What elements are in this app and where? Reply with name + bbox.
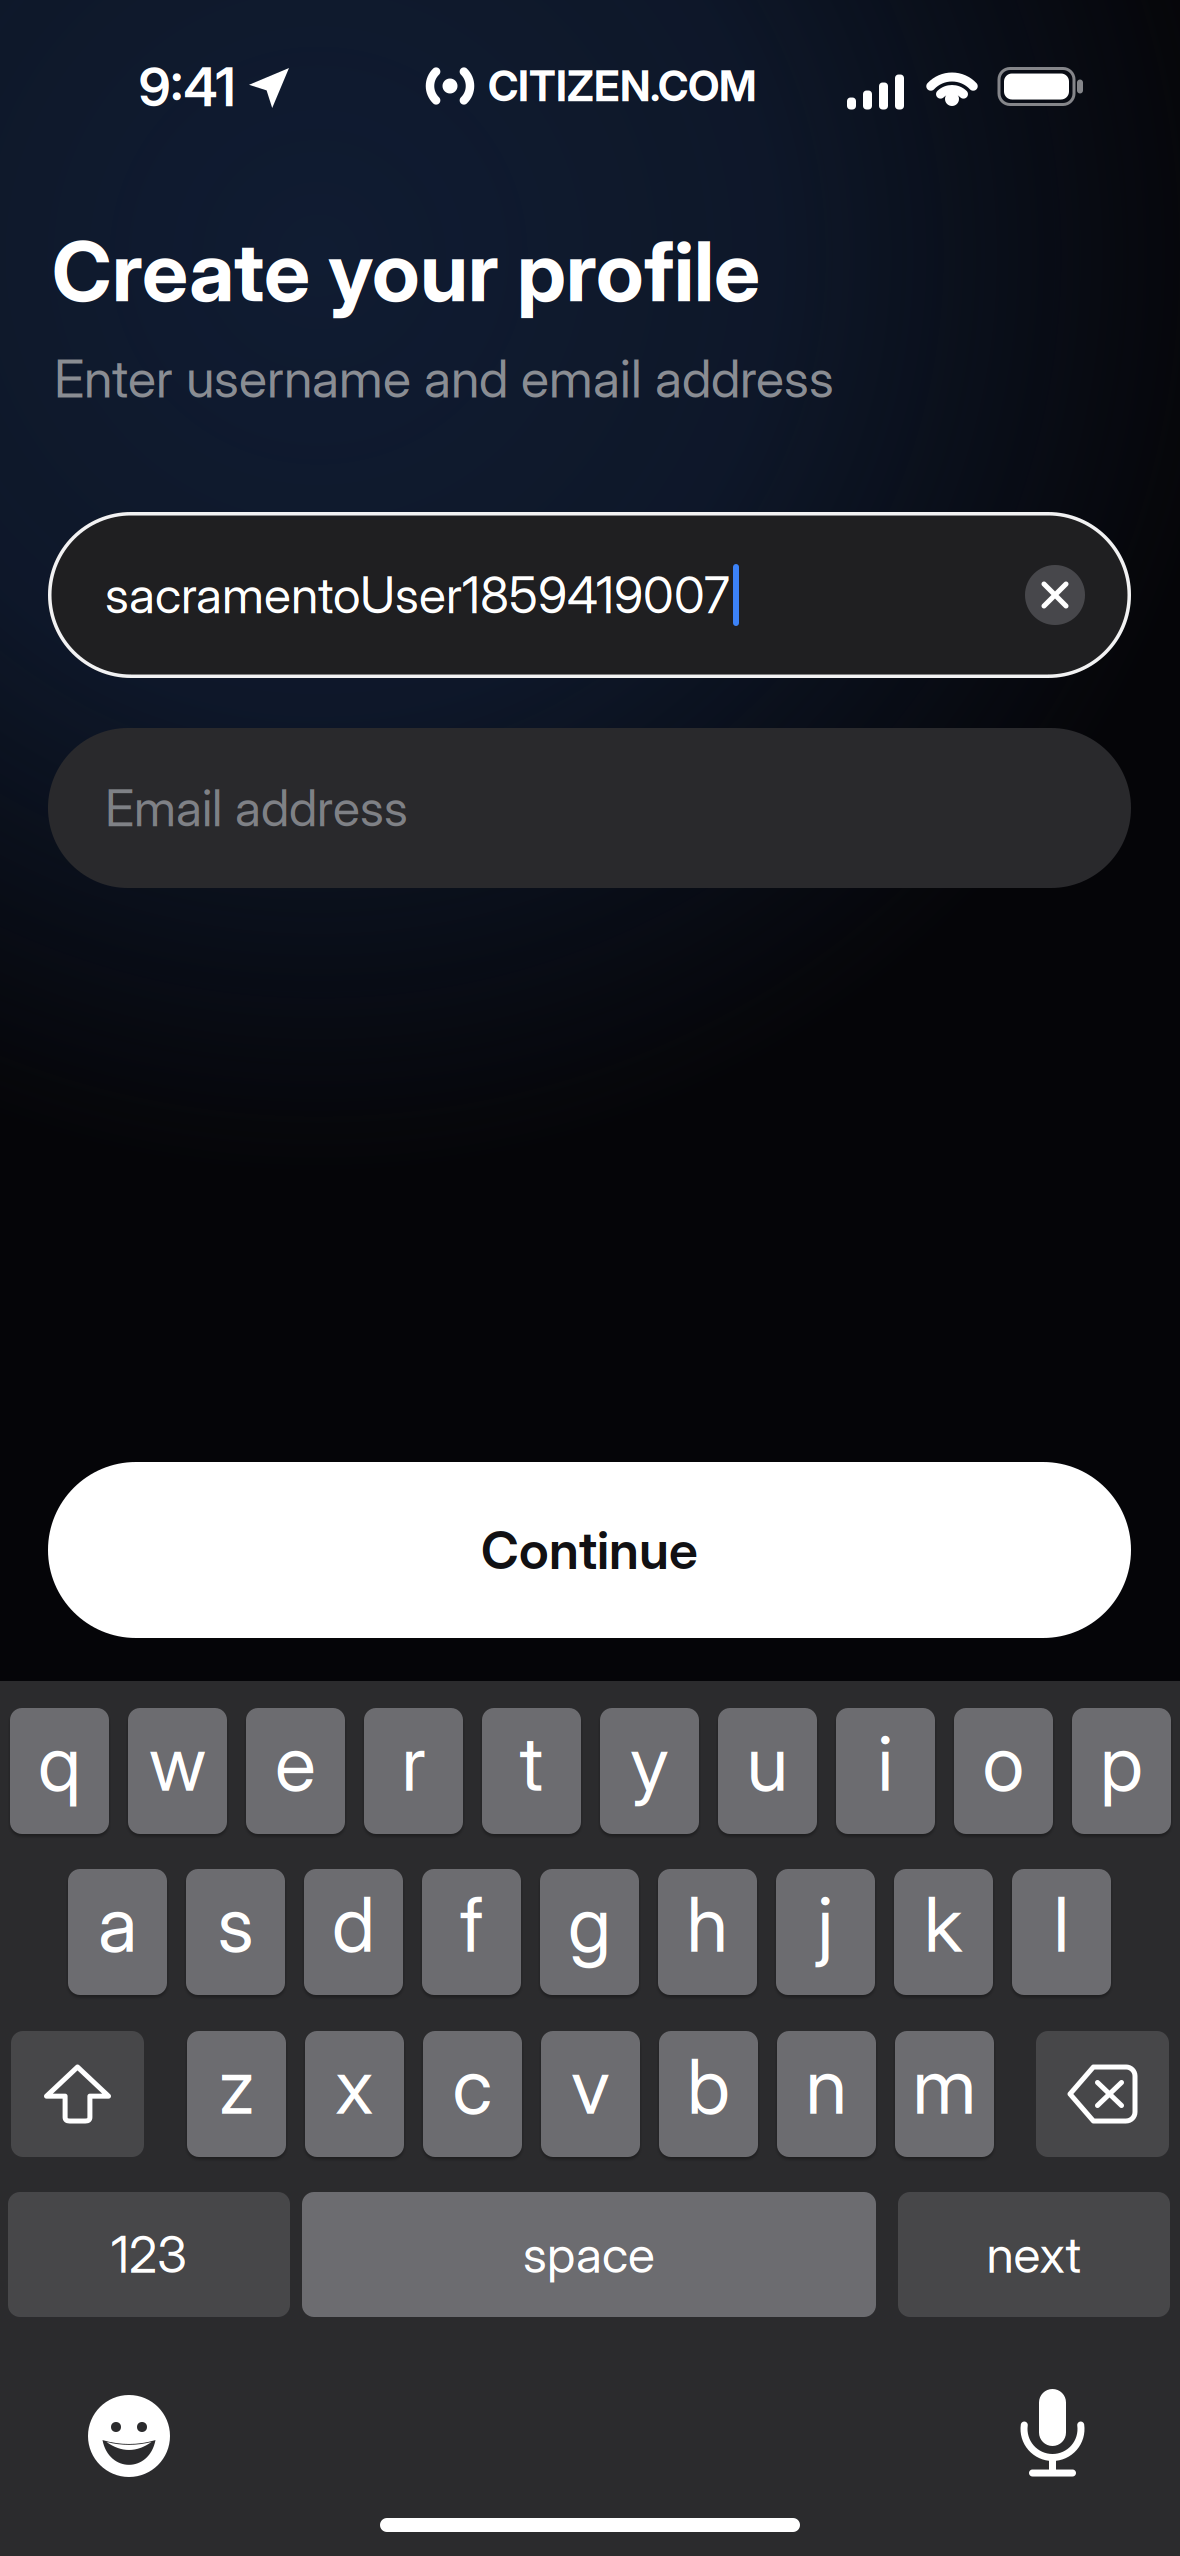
button[interactable]: Email address (48, 728, 1131, 888)
staticText: h (686, 1879, 728, 1969)
staticText: 9:41 (138, 56, 235, 118)
staticText: Email address (105, 778, 408, 837)
staticText: g (568, 1879, 611, 1969)
button[interactable]: s (186, 1869, 285, 1995)
staticText: d (332, 1879, 375, 1969)
staticText: z (218, 2041, 254, 2131)
button[interactable]: b (659, 2031, 758, 2157)
staticText: v (571, 2041, 610, 2131)
staticText: sacramentoUser1859419007 (105, 565, 730, 624)
button[interactable]: r (364, 1708, 463, 1834)
button[interactable]: f (422, 1869, 521, 1995)
button[interactable]: Dictate (1024, 2389, 1081, 2477)
button[interactable]: o (954, 1708, 1053, 1834)
staticText: i (877, 1718, 893, 1808)
staticText: next (986, 2225, 1081, 2284)
staticText: r (401, 1718, 425, 1808)
button[interactable]: Emoji (88, 2395, 170, 2477)
button[interactable]: q (10, 1708, 109, 1834)
staticText: a (98, 1879, 137, 1969)
button[interactable]: z (187, 2031, 286, 2157)
staticText: 123 (111, 2225, 187, 2284)
button[interactable]: c (423, 2031, 522, 2157)
staticText: b (687, 2041, 730, 2131)
button[interactable]: k (894, 1869, 993, 1995)
staticText: t (519, 1718, 543, 1808)
staticText: s (217, 1879, 253, 1969)
button[interactable]: h (658, 1869, 757, 1995)
button[interactable]: next (898, 2192, 1170, 2317)
staticText: l (1053, 1879, 1069, 1969)
button[interactable]: a (68, 1869, 167, 1995)
button[interactable]: m (895, 2031, 994, 2157)
staticText: x (335, 2041, 374, 2131)
button[interactable]: e (246, 1708, 345, 1834)
staticText: c (452, 2041, 492, 2131)
button[interactable]: Shift (11, 2031, 144, 2157)
button[interactable]: v (541, 2031, 640, 2157)
staticText: p (1100, 1718, 1143, 1808)
button[interactable]: l (1012, 1869, 1111, 1995)
button[interactable]: i (836, 1708, 935, 1834)
staticText: j (817, 1879, 833, 1969)
staticText: f (460, 1879, 483, 1969)
button[interactable]: space (302, 2192, 876, 2317)
staticText: Enter username and email address (54, 348, 834, 409)
button[interactable]: 123 (8, 2192, 290, 2317)
staticText: CITIZEN.COM (488, 61, 757, 111)
button[interactable]: Clear text (1025, 565, 1085, 625)
button[interactable]: x (305, 2031, 404, 2157)
button[interactable]: d (304, 1869, 403, 1995)
staticText: Continue (481, 1519, 698, 1581)
button[interactable]: t (482, 1708, 581, 1834)
staticText: o (982, 1718, 1024, 1808)
staticText: y (630, 1718, 669, 1808)
staticText: u (746, 1718, 788, 1808)
button[interactable]: Username (48, 512, 1131, 678)
staticText: n (805, 2041, 847, 2131)
button[interactable]: Delete (1036, 2031, 1169, 2157)
button[interactable]: g (540, 1869, 639, 1995)
staticText: m (912, 2041, 976, 2131)
staticText: w (149, 1718, 206, 1808)
staticText: k (924, 1879, 963, 1969)
button[interactable]: u (718, 1708, 817, 1834)
staticText: space (523, 2225, 655, 2284)
button[interactable]: Continue (48, 1462, 1131, 1638)
staticText: Create your profile (52, 223, 760, 320)
button[interactable]: y (600, 1708, 699, 1834)
button[interactable]: p (1072, 1708, 1171, 1834)
button[interactable]: w (128, 1708, 227, 1834)
staticText: q (38, 1718, 81, 1808)
button[interactable]: j (776, 1869, 875, 1995)
button[interactable]: n (777, 2031, 876, 2157)
staticText: e (275, 1718, 316, 1808)
